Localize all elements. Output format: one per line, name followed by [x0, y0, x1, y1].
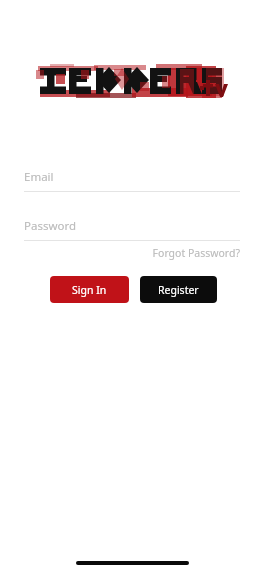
button[interactable]: Password: [24, 218, 240, 241]
staticText: Email: [24, 169, 54, 185]
staticText: Password: [24, 218, 77, 234]
staticText: Register: [158, 283, 199, 297]
button[interactable]: Register: [140, 276, 217, 303]
button[interactable]: Forgot Password?: [152, 244, 240, 262]
button[interactable]: Sign In: [50, 276, 129, 303]
staticText: Forgot Password?: [152, 246, 240, 260]
other: Home indicator: [76, 561, 189, 565]
button[interactable]: Email: [24, 169, 240, 192]
staticText: Sign In: [72, 283, 107, 297]
